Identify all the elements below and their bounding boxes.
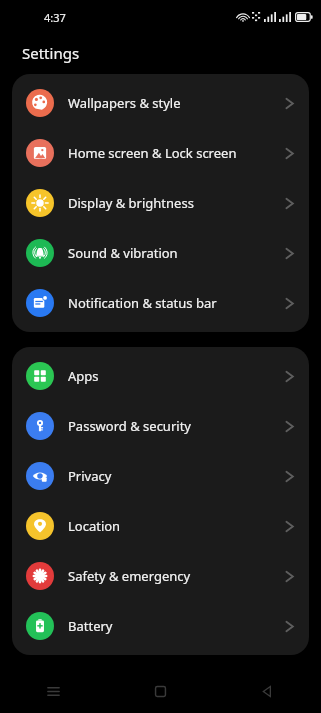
staticText: Sound & vibration	[68, 244, 284, 262]
staticText: Home screen & Lock screen	[68, 144, 284, 162]
staticText: Password & security	[68, 417, 284, 435]
button[interactable]: Home screen & Lock screen	[12, 128, 309, 178]
button[interactable]: Location	[12, 501, 309, 551]
staticText: Settings	[22, 43, 80, 63]
staticText: 4:37	[44, 10, 66, 25]
button[interactable]: Password & security	[12, 401, 309, 451]
button[interactable]: Battery	[12, 601, 309, 651]
button[interactable]: Display & brightness	[12, 178, 309, 228]
button[interactable]: Sound & vibration	[12, 228, 309, 278]
staticText: Privacy	[68, 467, 284, 485]
staticText: Apps	[68, 367, 284, 385]
staticText: Notification & status bar	[68, 294, 284, 312]
staticText: Display & brightness	[68, 194, 284, 212]
button[interactable]: Notification & status bar	[12, 278, 309, 328]
button[interactable]: Privacy	[12, 451, 309, 501]
button[interactable]: Back	[214, 670, 321, 713]
staticText: Safety & emergency	[68, 567, 284, 585]
staticText: Battery	[68, 617, 284, 635]
button[interactable]: Apps	[12, 351, 309, 401]
button[interactable]: Wallpapers & style	[12, 78, 309, 128]
button[interactable]: Recent apps	[0, 670, 107, 713]
staticText: Wallpapers & style	[68, 94, 284, 112]
button[interactable]: Home	[107, 670, 214, 713]
staticText: Location	[68, 517, 284, 535]
button[interactable]: Safety & emergency	[12, 551, 309, 601]
